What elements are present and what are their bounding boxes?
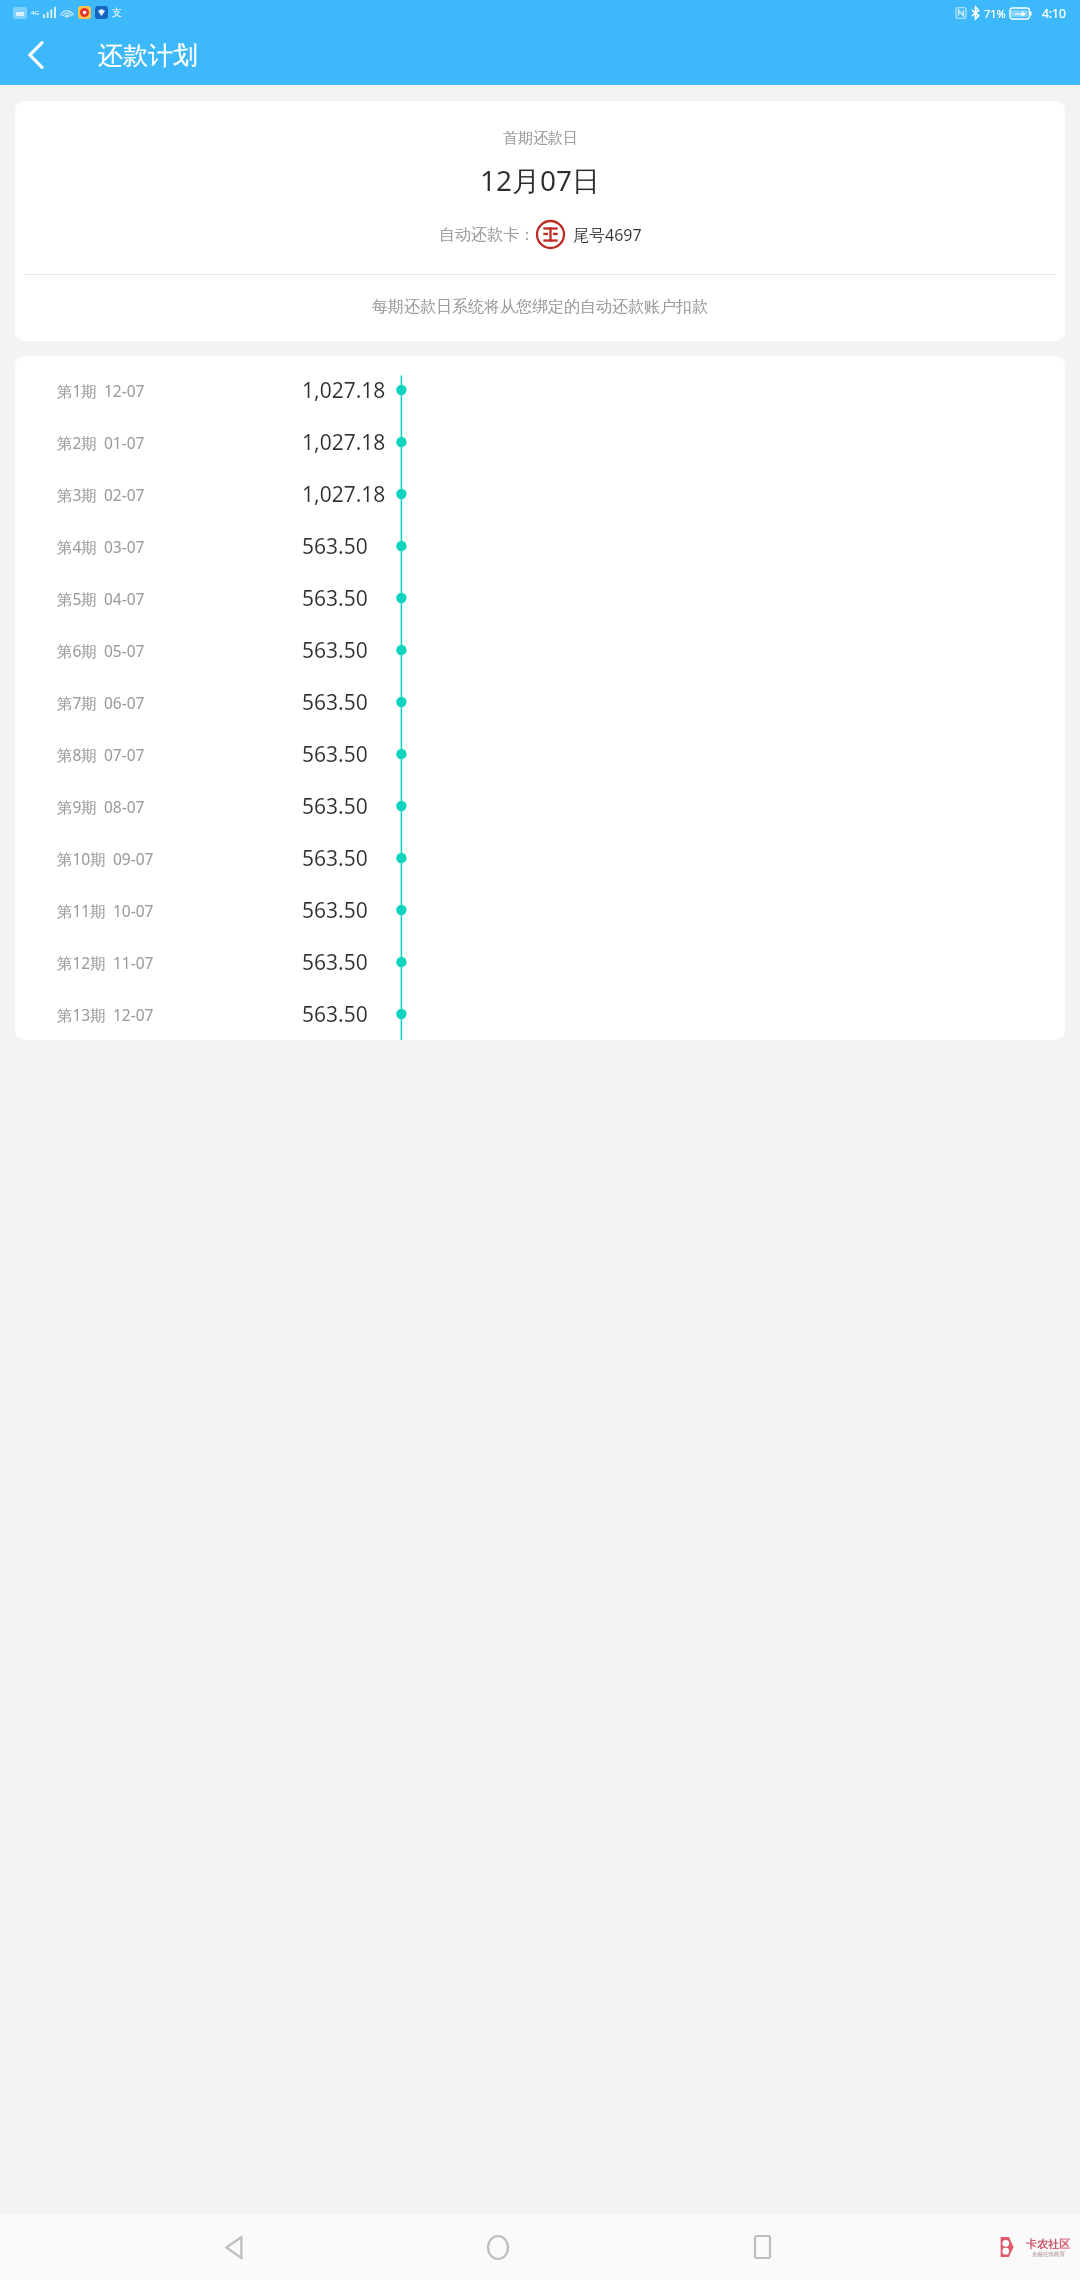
staticText: 第9期: [57, 796, 97, 817]
staticText: 02-07: [104, 484, 145, 505]
button[interactable]: 第12期: [15, 936, 1065, 988]
staticText: 563.50: [302, 636, 368, 665]
button[interactable]: 第3期: [15, 468, 1065, 520]
button[interactable]: 第5期: [15, 572, 1065, 624]
staticText: 第12期: [57, 952, 106, 973]
staticText: 563.50: [302, 844, 368, 873]
button[interactable]: 第4期: [15, 520, 1065, 572]
staticText: 第3期: [57, 484, 97, 505]
staticText: 563.50: [302, 740, 368, 769]
staticText: 12月07日: [480, 161, 601, 199]
button[interactable]: 第1期: [15, 364, 1065, 416]
staticText: 12-07: [104, 380, 145, 401]
staticText: 563.50: [302, 896, 368, 925]
button[interactable]: Back: [8, 27, 64, 83]
button[interactable]: 第2期: [15, 416, 1065, 468]
staticText: 第8期: [57, 744, 97, 765]
button[interactable]: Home: [470, 2219, 526, 2275]
staticText: 01-07: [104, 432, 145, 453]
staticText: 71%: [984, 6, 1006, 21]
staticText: HD: [16, 10, 25, 17]
staticText: 07-07: [104, 744, 145, 765]
button[interactable]: 首期还款日: [15, 101, 1065, 341]
staticText: 11-07: [113, 952, 154, 973]
staticText: 第13期: [57, 1004, 106, 1025]
staticText: 08-07: [104, 796, 145, 817]
button[interactable]: 第10期: [15, 832, 1065, 884]
staticText: 563.50: [302, 792, 368, 821]
staticText: 第11期: [57, 900, 106, 921]
staticText: 自动还款卡：: [439, 225, 535, 245]
button[interactable]: 第7期: [15, 676, 1065, 728]
button[interactable]: Back: [207, 2219, 263, 2275]
staticText: 1,027.18: [302, 428, 386, 457]
button[interactable]: 第8期: [15, 728, 1065, 780]
staticText: 04-07: [104, 588, 145, 609]
staticText: 第2期: [57, 432, 97, 453]
staticText: 563.50: [302, 948, 368, 977]
staticText: 563.50: [302, 688, 368, 717]
staticText: 09-07: [113, 848, 154, 869]
staticText: 第5期: [57, 588, 97, 609]
staticText: 支: [112, 6, 122, 19]
staticText: 还款计划: [98, 40, 198, 71]
staticText: 首期还款日: [503, 129, 578, 148]
staticText: 第10期: [57, 848, 106, 869]
staticText: 卡农社区: [1026, 2237, 1070, 2251]
button[interactable]: 第11期: [15, 884, 1065, 936]
staticText: 4:10: [1042, 5, 1066, 21]
staticText: 第7期: [57, 692, 97, 713]
staticText: 563.50: [302, 584, 368, 613]
staticText: 第6期: [57, 640, 97, 661]
staticText: 03-07: [104, 536, 145, 557]
staticText: 金融在线教育: [1032, 2251, 1065, 2258]
staticText: 12-07: [113, 1004, 154, 1025]
staticText: 563.50: [302, 532, 368, 561]
staticText: 10-07: [113, 900, 154, 921]
staticText: 1,027.18: [302, 376, 386, 405]
staticText: 1,027.18: [302, 480, 386, 509]
button[interactable]: 第6期: [15, 624, 1065, 676]
staticText: 563.50: [302, 1000, 368, 1029]
staticText: 每期还款日系统将从您绑定的自动还款账户扣款: [372, 297, 708, 317]
staticText: 06-07: [104, 692, 145, 713]
staticText: 第1期: [57, 380, 97, 401]
button[interactable]: Recent apps: [734, 2219, 790, 2275]
button[interactable]: 第9期: [15, 780, 1065, 832]
staticText: 05-07: [104, 640, 145, 661]
button[interactable]: 第13期: [15, 988, 1065, 1040]
staticText: 尾号4697: [573, 224, 642, 246]
staticText: 第4期: [57, 536, 97, 557]
staticText: 4G: [31, 9, 39, 17]
